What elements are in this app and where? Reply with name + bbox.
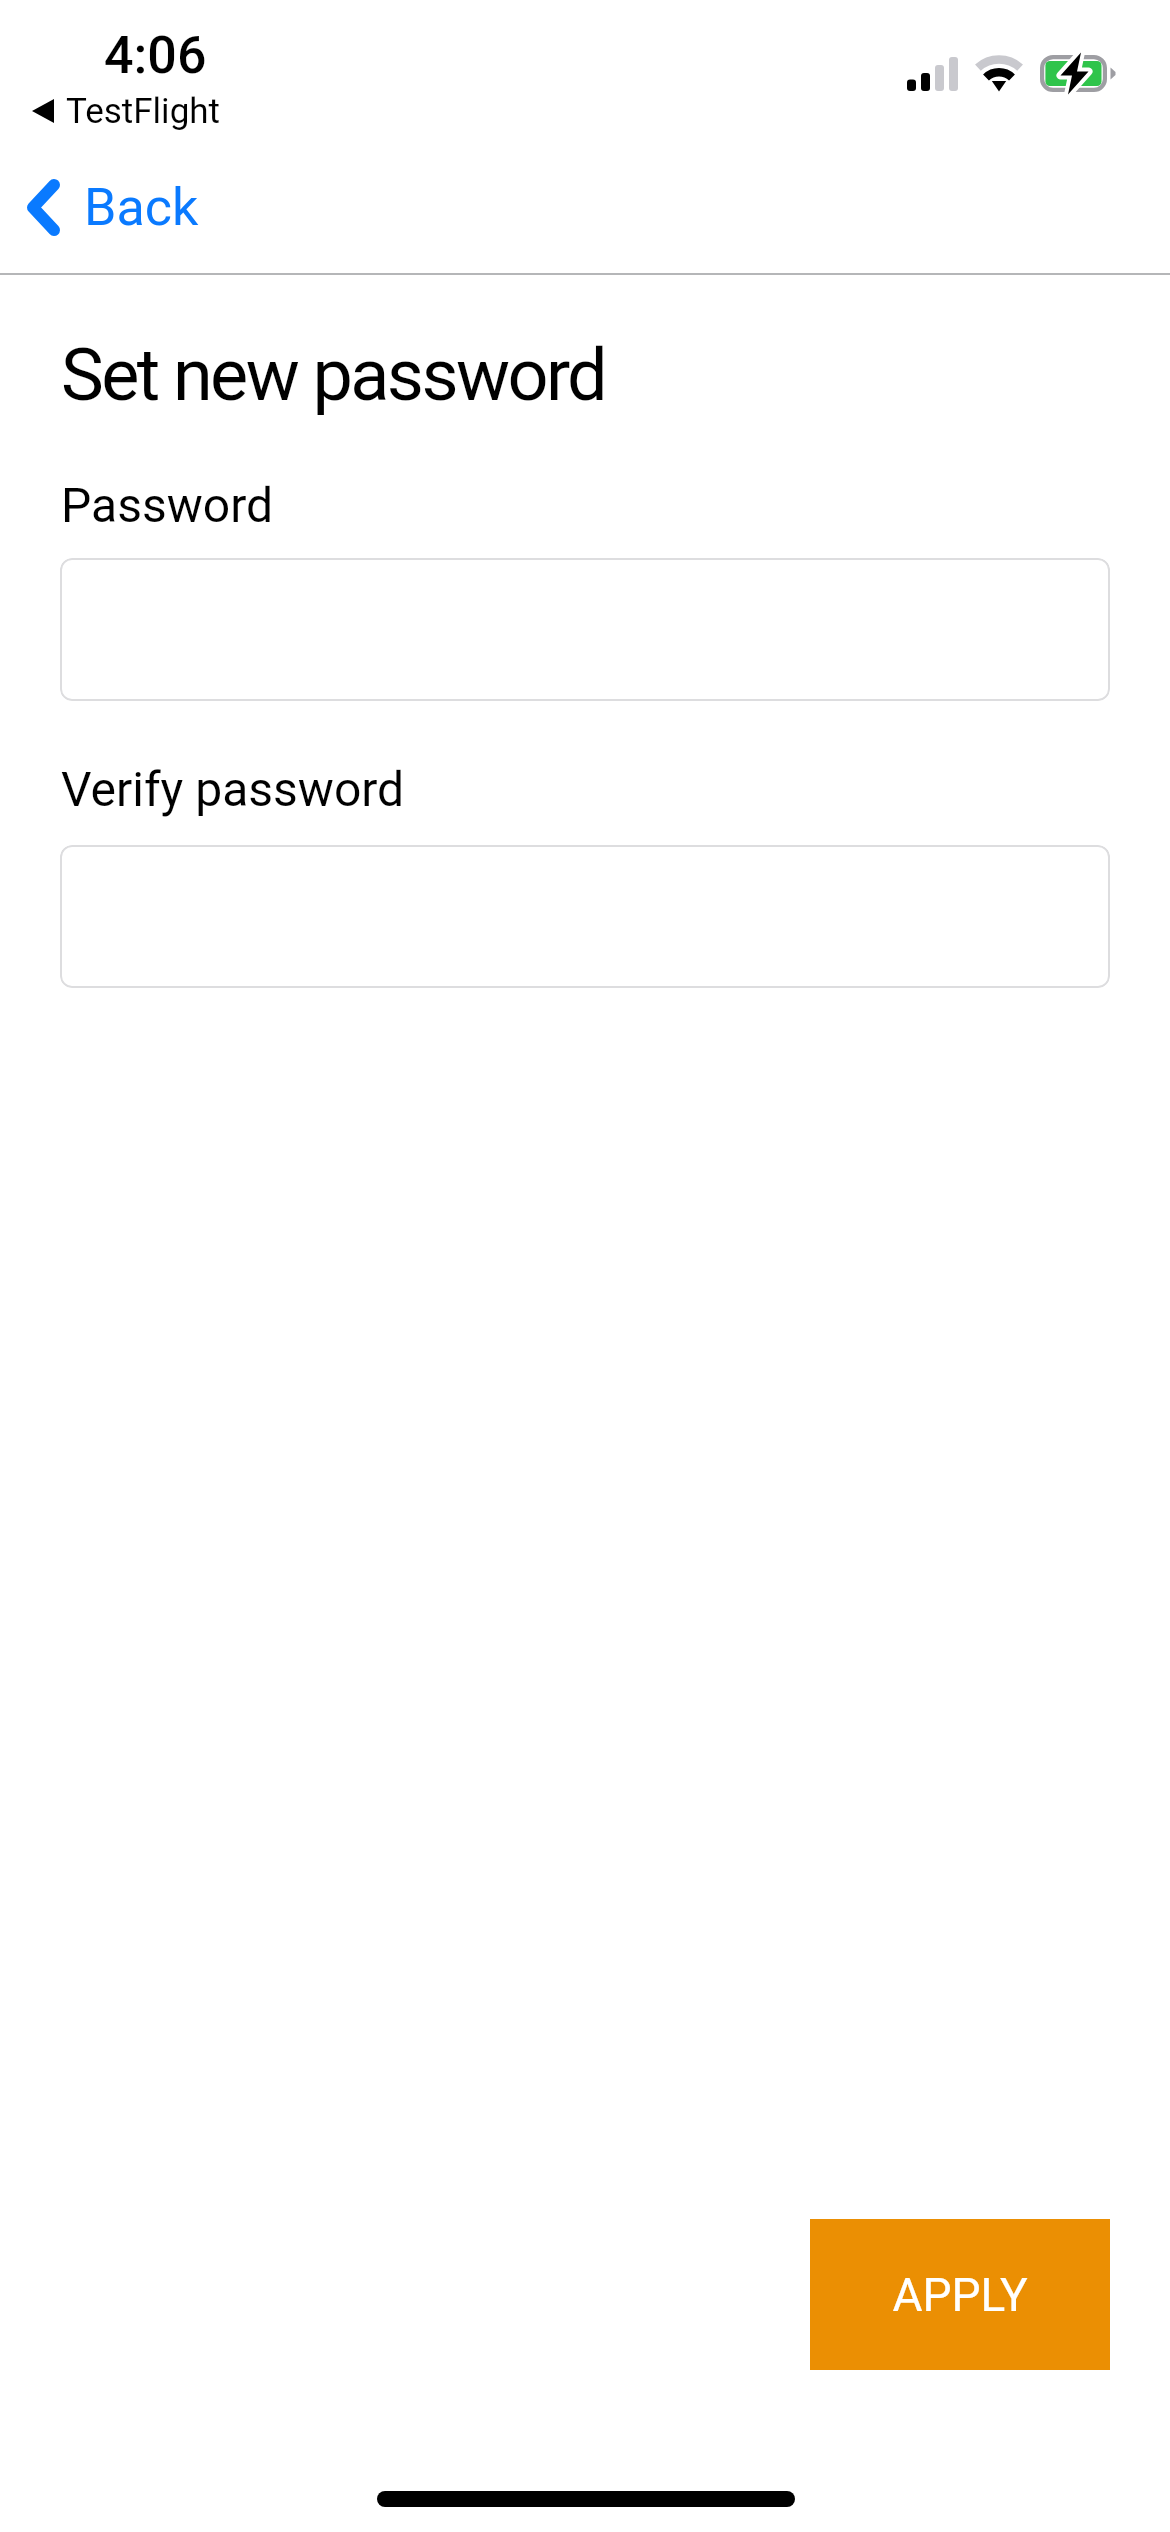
staticText: Back — [84, 177, 199, 238]
button[interactable]: Password — [60, 558, 1110, 701]
staticText: Verify password — [61, 761, 405, 817]
staticText: TestFlight — [66, 91, 221, 132]
staticText: 4:06 — [104, 25, 207, 86]
button[interactable]: Verify password — [60, 845, 1110, 988]
button[interactable]: APPLY — [810, 2219, 1110, 2370]
staticText: Set new password — [61, 333, 606, 417]
staticText: Password — [61, 477, 274, 533]
button[interactable]: Back — [4, 155, 229, 259]
staticText: APPLY — [892, 2268, 1028, 2322]
